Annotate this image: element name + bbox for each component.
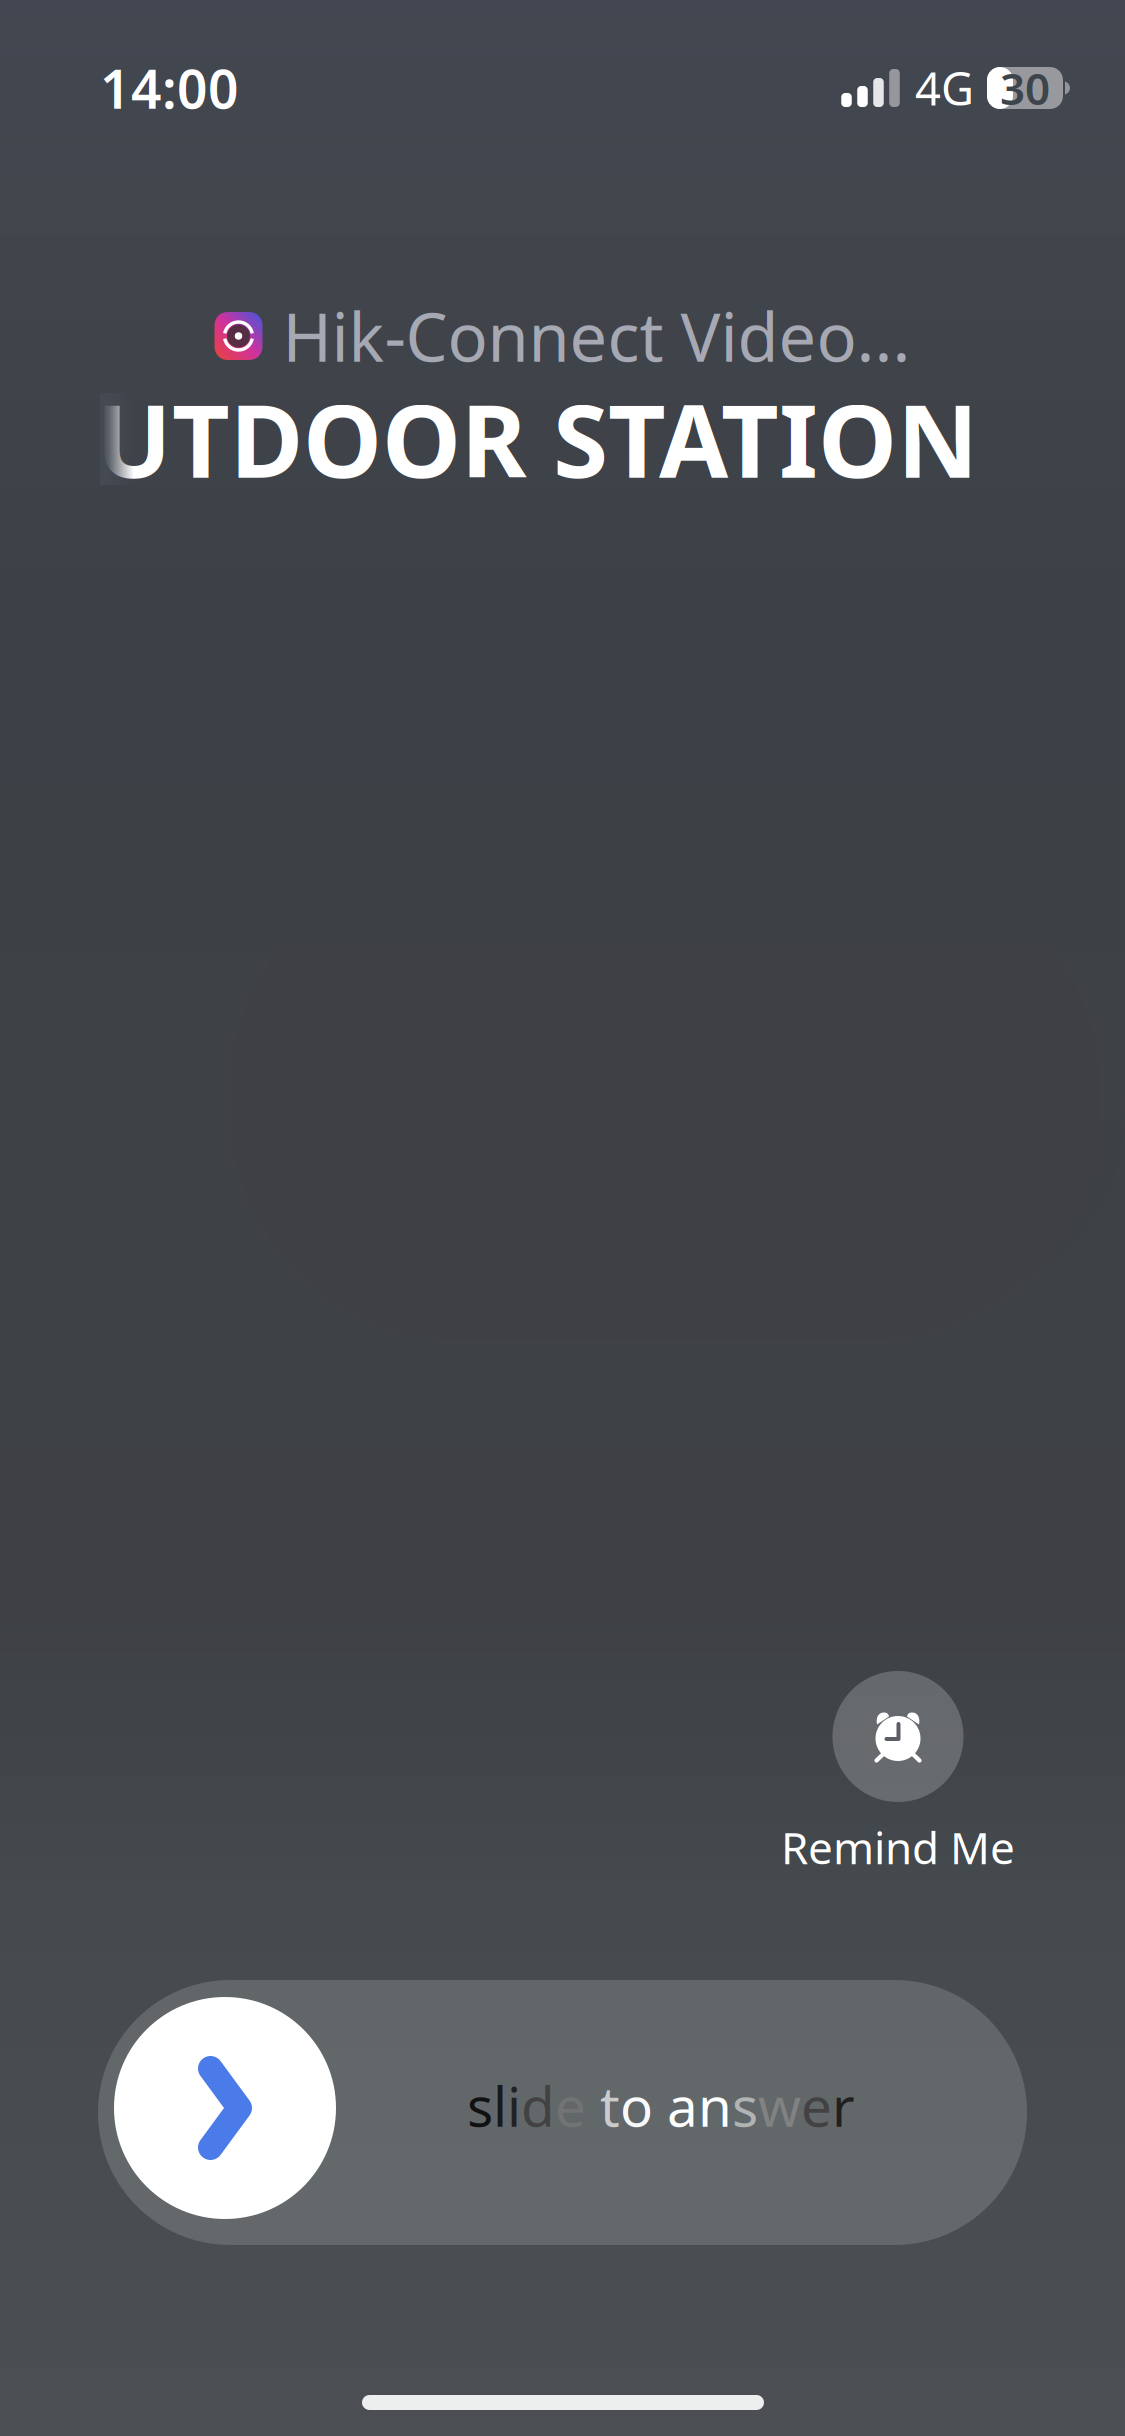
staticText: Hik-Connect Video... — [282, 292, 910, 380]
staticText: l — [493, 2069, 507, 2142]
staticText: t — [600, 2069, 620, 2142]
staticText: s — [467, 2069, 493, 2142]
staticText: i — [507, 2069, 521, 2142]
staticText: 14:00 — [100, 53, 239, 123]
staticText: s — [732, 2069, 758, 2142]
button[interactable]: Remind Me — [773, 1671, 1023, 1876]
button[interactable]: s — [98, 1980, 1027, 2245]
staticText: r — [832, 2069, 855, 2142]
staticText: d — [521, 2069, 555, 2142]
staticText: e — [555, 2069, 586, 2142]
staticText: UTDOOR STATION — [96, 373, 978, 505]
staticText: Remind Me — [781, 1818, 1015, 1876]
staticText: w — [758, 2069, 801, 2142]
staticText: 30 — [1000, 59, 1050, 117]
staticText: o — [620, 2069, 653, 2142]
staticText: 4G — [915, 58, 974, 118]
staticText: e — [801, 2069, 832, 2142]
staticText: n — [698, 2069, 732, 2142]
staticText: a — [667, 2069, 698, 2142]
